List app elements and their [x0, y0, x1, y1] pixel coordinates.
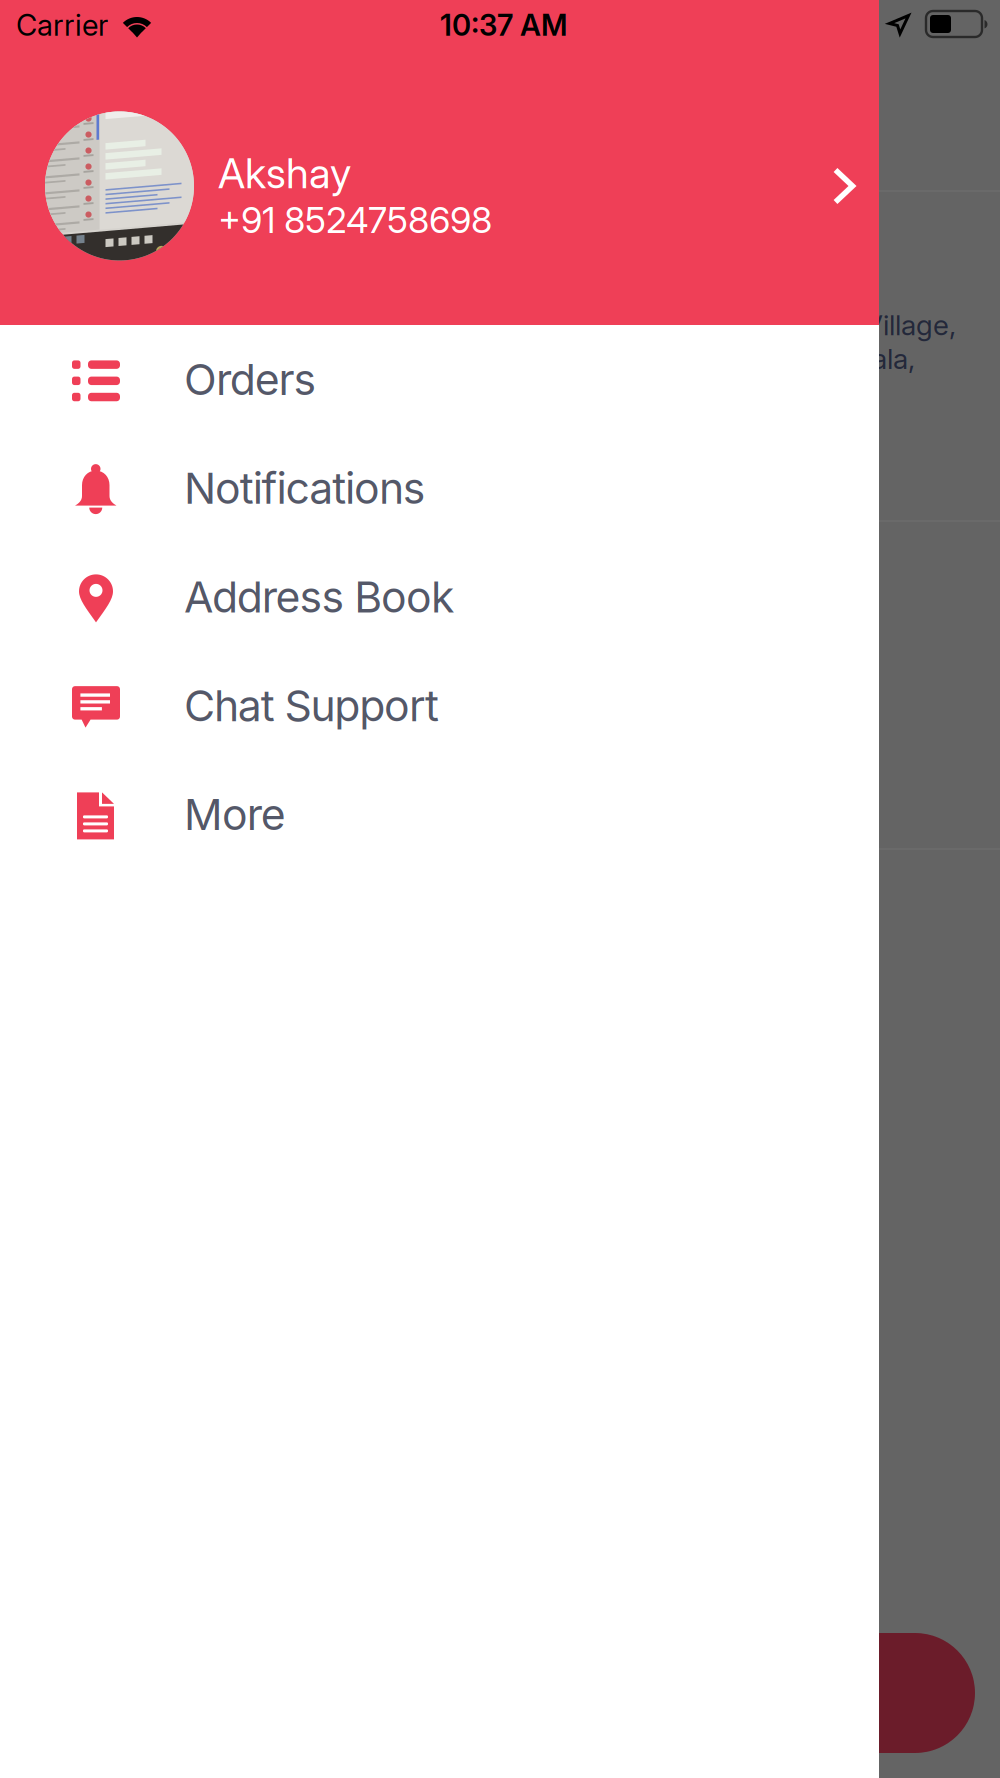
staticText: Address Book — [184, 571, 454, 623]
staticText: 10:37 AM — [440, 7, 568, 43]
staticText: Orders — [184, 354, 316, 405]
staticText: Carrier — [16, 7, 108, 43]
staticText: Sadar Bazar, Hanuman Village, — [565, 308, 956, 342]
staticText: Near Mathura Road, Kerala, — [565, 342, 915, 376]
staticText: Notifications — [184, 462, 426, 514]
button[interactable]: Notifications — [0, 434, 879, 543]
staticText: More — [184, 789, 286, 840]
staticText: Chat Support — [184, 680, 439, 731]
button[interactable]: More — [0, 760, 879, 869]
button[interactable]: Orders — [0, 325, 879, 434]
button[interactable]: Address Book — [0, 542, 879, 651]
staticText: +91 8524758698 — [218, 198, 492, 242]
staticText: Akshay — [218, 148, 351, 198]
button[interactable]: Akshay — [0, 86, 879, 286]
button[interactable]: Close menu — [879, 0, 1000, 1778]
button[interactable]: Chat Support — [0, 651, 879, 760]
